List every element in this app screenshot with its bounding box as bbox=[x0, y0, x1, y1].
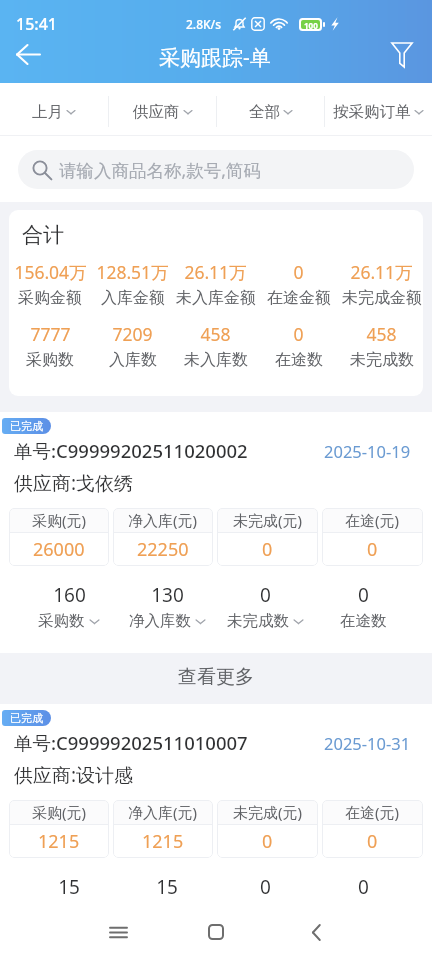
staticText: 净入库(元) bbox=[128, 510, 198, 530]
staticText: 采购(元) bbox=[32, 802, 87, 822]
staticText: 7777 bbox=[30, 322, 71, 346]
button[interactable]: 按采购订单 bbox=[325, 85, 432, 138]
staticText: 单号:C99999202511010007 bbox=[14, 730, 248, 755]
staticText: 0 bbox=[260, 582, 271, 608]
button[interactable]: Recent apps bbox=[96, 910, 140, 954]
staticText: 128.51万 bbox=[96, 260, 169, 284]
button[interactable]: Filter bbox=[372, 33, 432, 82]
staticText: 净入库(元) bbox=[128, 802, 198, 822]
staticText: 供应商:设计感 bbox=[14, 762, 134, 788]
staticText: 7209 bbox=[112, 322, 153, 346]
staticText: 458 bbox=[366, 322, 397, 346]
staticText: 采购(元) bbox=[32, 510, 87, 530]
staticText: 采购金额 bbox=[18, 288, 82, 308]
staticText: 在途数 bbox=[275, 350, 323, 370]
staticText: 在途(元) bbox=[345, 510, 400, 530]
button[interactable]: 合计 bbox=[9, 210, 423, 396]
staticText: 15:41 bbox=[16, 13, 57, 35]
button[interactable]: 已完成 bbox=[0, 412, 432, 653]
staticText: 采购数 bbox=[26, 350, 74, 370]
staticText: 0 bbox=[293, 260, 304, 284]
staticText: 已完成 bbox=[10, 711, 43, 725]
staticText: 按采购订单 bbox=[333, 102, 411, 122]
staticText: 0 bbox=[358, 874, 369, 900]
button[interactable]: 已完成 bbox=[0, 704, 432, 922]
staticText: 0 bbox=[358, 582, 369, 608]
staticText: 已完成 bbox=[10, 419, 43, 433]
button[interactable]: 供应商 bbox=[109, 85, 216, 138]
staticText: 2025-10-19 bbox=[324, 440, 411, 462]
staticText: 0 bbox=[260, 874, 271, 900]
button[interactable]: 全部 bbox=[217, 85, 324, 138]
button[interactable]: 请输入商品名称,款号,简码 bbox=[18, 150, 414, 189]
staticText: 22250 bbox=[137, 537, 189, 562]
staticText: 在途(元) bbox=[345, 802, 400, 822]
staticText: 请输入商品名称,款号,简码 bbox=[59, 158, 261, 182]
staticText: 未完成(元) bbox=[233, 802, 303, 822]
staticText: 未入库数 bbox=[184, 350, 248, 370]
staticText: 0 bbox=[367, 537, 378, 562]
staticText: 查看更多 bbox=[178, 665, 254, 689]
staticText: 合计 bbox=[22, 222, 64, 248]
staticText: 上月 bbox=[32, 102, 63, 122]
staticText: 未完成(元) bbox=[233, 510, 303, 530]
staticText: 26.11万 bbox=[350, 260, 413, 284]
staticText: 供应商 bbox=[133, 102, 180, 122]
staticText: 未完成数 bbox=[350, 350, 414, 370]
staticText: 100 bbox=[304, 20, 318, 29]
staticText: 15 bbox=[156, 874, 178, 900]
staticText: 未入库金额 bbox=[176, 288, 256, 308]
staticText: 在途金额 bbox=[267, 288, 331, 308]
staticText: 15 bbox=[58, 874, 80, 900]
staticText: 1215 bbox=[142, 829, 184, 854]
staticText: 1215 bbox=[38, 829, 80, 854]
staticText: 入库数 bbox=[109, 350, 157, 370]
button[interactable]: 查看更多 bbox=[0, 653, 432, 700]
staticText: 入库金额 bbox=[101, 288, 165, 308]
staticText: 0 bbox=[367, 829, 378, 854]
staticText: 156.04万 bbox=[14, 260, 87, 284]
button[interactable]: Back bbox=[0, 33, 57, 82]
staticText: 全部 bbox=[249, 102, 280, 122]
staticText: 采购数 bbox=[38, 611, 85, 631]
staticText: 采购跟踪-单 bbox=[159, 43, 271, 72]
staticText: 130 bbox=[151, 582, 184, 608]
staticText: 单号:C99999202511020002 bbox=[14, 438, 248, 463]
staticText: 供应商:戈依绣 bbox=[14, 470, 134, 496]
staticText: 458 bbox=[200, 322, 231, 346]
staticText: 未完成数 bbox=[227, 611, 289, 631]
staticText: 2025-10-31 bbox=[324, 732, 411, 754]
staticText: 未完成金额 bbox=[342, 288, 422, 308]
button[interactable]: Back bbox=[294, 910, 338, 954]
staticText: 净入库数 bbox=[129, 611, 191, 631]
staticText: 在途数 bbox=[340, 611, 387, 631]
staticText: 0 bbox=[262, 829, 273, 854]
staticText: 26.11万 bbox=[184, 260, 247, 284]
button[interactable]: 上月 bbox=[0, 85, 108, 138]
staticText: 0 bbox=[293, 322, 304, 346]
staticText: 2.8K/s bbox=[186, 16, 222, 32]
staticText: 0 bbox=[262, 537, 273, 562]
button[interactable]: Home bbox=[194, 910, 238, 954]
staticText: 26000 bbox=[33, 537, 85, 562]
staticText: 160 bbox=[53, 582, 86, 608]
